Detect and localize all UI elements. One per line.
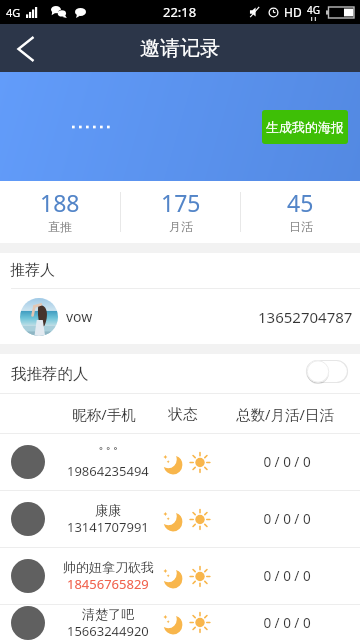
staticText: 清楚了吧 [82, 606, 134, 622]
button[interactable]: 康康 [0, 491, 360, 547]
staticText: ˚ ˚ ˚ [99, 444, 118, 462]
staticText: 0 / 0 / 0 [214, 614, 360, 632]
staticText: 月活 [169, 219, 193, 234]
staticText: 45 [287, 187, 314, 218]
button[interactable]: Back [2, 25, 50, 73]
staticText: 昵称/手机 [52, 404, 156, 424]
staticText: 帅的妞拿刀砍我 [63, 559, 154, 575]
staticText: 175 [161, 187, 201, 218]
staticText: 13652704787 [258, 307, 353, 327]
staticText: vow [66, 307, 93, 326]
staticText: 推荐人 [10, 261, 55, 280]
staticText: 188 [40, 187, 80, 218]
staticText: 邀请记录 [140, 36, 220, 61]
button[interactable]: Toggle display [306, 360, 348, 383]
staticText: 状态 [156, 405, 210, 423]
button[interactable]: 清楚了吧 [0, 605, 360, 640]
button[interactable]: 188 [0, 187, 120, 238]
button[interactable]: vow [0, 289, 360, 344]
staticText: 0 / 0 / 0 [214, 567, 360, 585]
staticText: 我推荐的人 [11, 364, 89, 384]
button[interactable]: 生成我的海报 [262, 110, 348, 144]
staticText: 总数/月活/日活 [210, 404, 360, 424]
button[interactable]: 175 [121, 187, 240, 238]
staticText: 18456765829 [67, 575, 149, 593]
button[interactable]: ˚ ˚ ˚ [0, 434, 360, 490]
button[interactable]: 45 [241, 187, 360, 238]
staticText: 日活 [289, 219, 313, 234]
staticText: 15663244920 [67, 622, 149, 640]
staticText: 0 / 0 / 0 [214, 453, 360, 471]
staticText: HD [284, 4, 302, 20]
button[interactable]: 帅的妞拿刀砍我 [0, 548, 360, 604]
staticText: 直推 [48, 219, 72, 234]
staticText: 19864235494 [67, 462, 149, 480]
staticText: 康康 [95, 502, 121, 518]
staticText: 22:18 [163, 3, 197, 21]
staticText: 生成我的海报 [266, 119, 344, 135]
staticText: 13141707991 [67, 518, 149, 536]
staticText: 0 / 0 / 0 [214, 510, 360, 528]
staticText: 4G [307, 3, 320, 17]
staticText: 4G [6, 5, 21, 20]
